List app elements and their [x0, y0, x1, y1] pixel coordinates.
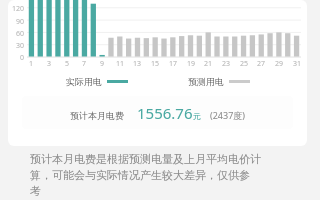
staticText: 5: [65, 59, 70, 69]
staticText: 31: [293, 59, 302, 69]
staticText: 7: [82, 59, 87, 69]
staticText: 算，可能会与实际情况产生较大差异，仅供参: [30, 168, 250, 182]
staticText: 30: [16, 41, 25, 51]
staticText: 1556.76: [137, 103, 193, 123]
staticText: 19: [187, 59, 196, 69]
staticText: 元: [193, 111, 201, 121]
staticText: 21: [204, 59, 213, 69]
other: Daily electricity usage bar chart: [8, 0, 307, 70]
staticText: 1: [29, 59, 34, 69]
staticText: 考: [30, 184, 41, 198]
staticText: 预测用电: [188, 76, 224, 87]
staticText: 120: [12, 4, 25, 14]
staticText: 预计本月电费: [70, 110, 124, 121]
staticText: 25: [240, 59, 249, 69]
button[interactable]: 预计本月电费: [22, 96, 293, 129]
staticText: (2437度): [210, 109, 245, 121]
staticText: 90: [16, 17, 25, 27]
staticText: 13: [133, 59, 142, 69]
staticText: 23: [222, 59, 231, 69]
staticText: 27: [257, 59, 266, 69]
button[interactable]: 实际用电: [66, 74, 128, 89]
button[interactable]: 预测用电: [188, 74, 250, 89]
staticText: 3: [47, 59, 52, 69]
staticText: 预计本月电费是根据预测电量及上月平均电价计: [30, 152, 261, 166]
staticText: 17: [169, 59, 178, 69]
staticText: 15: [151, 59, 160, 69]
staticText: 实际用电: [66, 76, 102, 87]
staticText: 0: [20, 53, 25, 63]
staticText: 9: [100, 59, 105, 69]
staticText: 29: [275, 59, 284, 69]
staticText: 11: [116, 59, 125, 69]
staticText: 60: [16, 29, 25, 39]
